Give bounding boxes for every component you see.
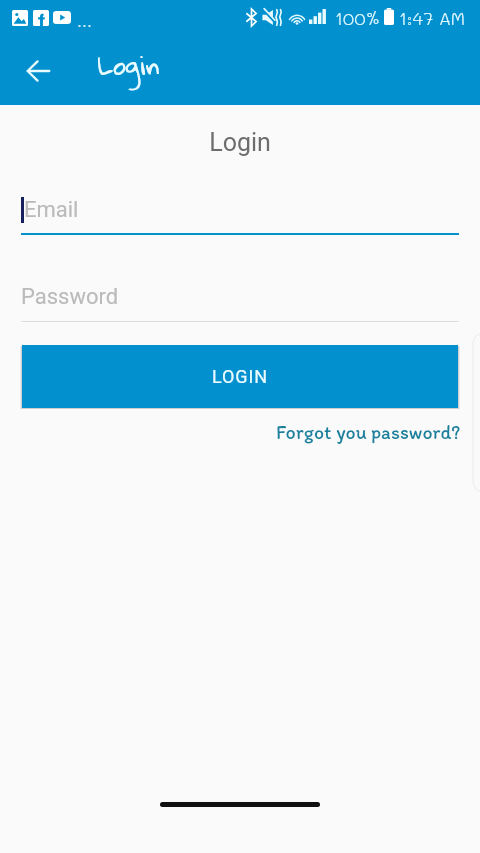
staticText: Password — [21, 284, 119, 310]
button[interactable]: LOGIN — [22, 345, 458, 408]
staticText: 100% — [335, 6, 381, 29]
button[interactable]: Forgot you password? — [276, 420, 461, 444]
button[interactable]: Back — [0, 36, 75, 105]
staticText: LOGIN — [212, 366, 269, 387]
staticText: Login — [98, 40, 160, 90]
staticText: Forgot you password? — [276, 420, 461, 444]
staticText: Email — [24, 197, 79, 223]
staticText: ... — [77, 9, 92, 31]
staticText: Login — [0, 128, 480, 157]
staticText: 1:47 AM — [399, 6, 465, 29]
